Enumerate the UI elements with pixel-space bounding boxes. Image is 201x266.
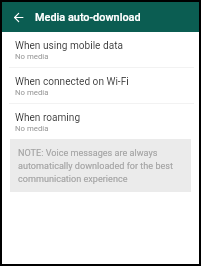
staticText: When roaming	[15, 112, 81, 124]
button[interactable]: Back	[10, 9, 26, 25]
staticText: No media	[15, 124, 49, 133]
staticText: When using mobile data	[15, 40, 123, 52]
staticText: No media	[15, 52, 49, 61]
staticText: No media	[15, 88, 49, 97]
staticText: When connected on Wi-Fi	[15, 76, 129, 88]
button[interactable]: When connected on Wi-Fi	[2, 68, 199, 104]
button[interactable]: When using mobile data	[2, 32, 199, 68]
staticText: NOTE: Voice messages are always automati…	[18, 148, 184, 184]
button[interactable]: When roaming	[2, 104, 199, 140]
staticText: Media auto-download	[35, 11, 141, 24]
